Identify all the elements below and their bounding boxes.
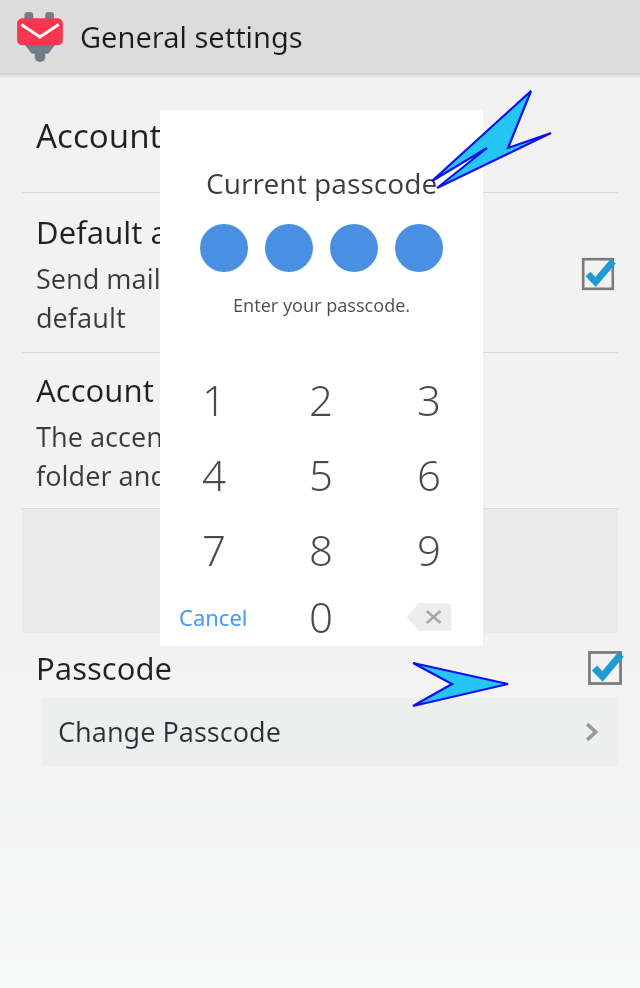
staticText: Enter your passcode.	[233, 293, 411, 318]
staticText: 5	[309, 446, 333, 503]
button[interactable]: Backspace	[375, 587, 483, 646]
button[interactable]: Passcode	[0, 639, 640, 697]
staticText: Cancel	[179, 602, 248, 632]
staticText: Account colors	[36, 369, 250, 411]
button[interactable]: Cancel	[160, 587, 267, 646]
button[interactable]: 7	[160, 512, 267, 587]
button[interactable]: 1	[160, 362, 267, 437]
staticText: 7	[202, 521, 226, 578]
staticText: The accent color can be used in folder a…	[36, 418, 434, 494]
staticText: General settings	[80, 17, 303, 56]
staticText: 1	[202, 371, 226, 428]
staticText: Passcode	[36, 647, 584, 689]
staticText: Send mail from this account by default	[36, 260, 427, 336]
staticText: Default account	[36, 211, 266, 253]
button[interactable]: 8	[267, 512, 375, 587]
button[interactable]: 3	[375, 362, 483, 437]
staticText: 9	[417, 521, 441, 578]
staticText: 4	[202, 446, 226, 503]
button[interactable]: 0	[267, 587, 375, 646]
button[interactable]: 9	[375, 512, 483, 587]
button[interactable]: Change Passcode	[42, 697, 618, 766]
button[interactable]: Account colors	[0, 353, 640, 508]
staticText: Current passcode	[206, 164, 438, 202]
staticText: 3	[417, 371, 441, 428]
staticText: 0	[309, 588, 333, 645]
button[interactable]: 2	[267, 362, 375, 437]
staticText: Accounts	[36, 113, 178, 158]
button[interactable]: 4	[160, 437, 267, 512]
staticText: Change Passcode	[58, 713, 578, 750]
button[interactable]: 5	[267, 437, 375, 512]
staticText: 8	[309, 521, 333, 578]
button[interactable]: Default account	[0, 193, 640, 352]
button[interactable]: 6	[375, 437, 483, 512]
staticText: 6	[417, 446, 441, 503]
staticText: 2	[309, 371, 333, 428]
